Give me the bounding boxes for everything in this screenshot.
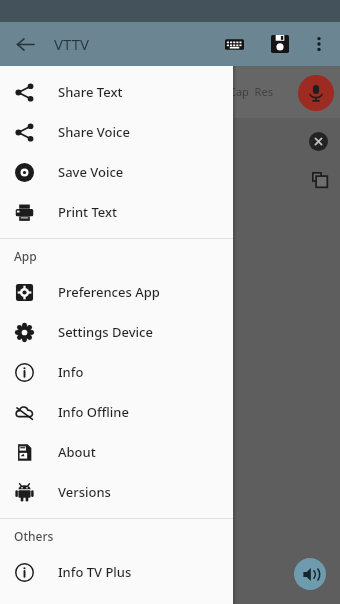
staticText: Preferences App [58, 283, 160, 301]
button[interactable]: Clear [309, 132, 328, 151]
staticText: Info Offline [58, 403, 129, 421]
button[interactable]: Info TV Plus [0, 552, 233, 592]
button[interactable]: Settings Device [0, 312, 233, 352]
staticText: Info [58, 363, 84, 381]
staticText: Share Voice [58, 123, 130, 141]
staticText: Others [14, 528, 54, 544]
button[interactable]: Share Voice [0, 112, 233, 152]
button[interactable]: More options [302, 27, 336, 61]
button[interactable]: Info Offline [0, 392, 233, 432]
button[interactable]: Versions [0, 472, 233, 512]
button[interactable]: Record voice [298, 75, 334, 111]
button[interactable]: Keyboard [216, 26, 252, 62]
button[interactable]: Copy [309, 169, 330, 190]
staticText: Info TV Plus [58, 563, 132, 581]
staticText: Versions [58, 483, 111, 501]
staticText: About [58, 443, 96, 461]
staticText: Share Text [58, 83, 123, 101]
staticText: App [14, 248, 37, 264]
button[interactable]: Save Voice [0, 152, 233, 192]
staticText: VTTV [54, 34, 89, 54]
staticText: Print Text [58, 203, 118, 221]
staticText: Save Voice [58, 163, 124, 181]
button[interactable]: Info [0, 352, 233, 392]
button[interactable]: Speak [294, 558, 326, 590]
staticText: Cap Res [229, 84, 273, 99]
button[interactable]: Preferences App [0, 272, 233, 312]
button[interactable]: Save [262, 26, 298, 62]
button[interactable]: Print Text [0, 192, 233, 232]
staticText: Settings Device [58, 323, 153, 341]
button[interactable]: About [0, 432, 233, 472]
button[interactable]: Back [8, 27, 42, 61]
button[interactable]: Share Text [0, 72, 233, 112]
